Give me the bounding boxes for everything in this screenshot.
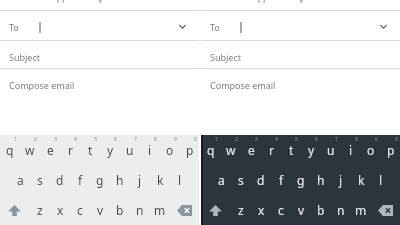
button[interactable]: y [301,135,321,165]
button[interactable] [203,195,228,225]
staticText: p [186,142,194,158]
button[interactable]: r [60,135,80,165]
button[interactable]: o [361,135,381,165]
staticText: m [355,202,367,218]
staticText: 1 [14,136,17,143]
button[interactable]: o [160,135,180,165]
staticText: g [96,172,104,188]
button[interactable]: l [371,165,391,195]
button[interactable]: Compose email [0,69,199,101]
staticText: y [308,142,315,158]
button[interactable]: h [110,165,130,195]
button[interactable]: b [311,195,331,225]
staticText: i [148,142,152,158]
button[interactable]: w [20,135,40,165]
staticText: 4 [74,136,77,143]
button[interactable]: t [80,135,100,165]
button[interactable]: v [291,195,311,225]
button[interactable]: Subject [201,41,400,68]
staticText: v [97,202,104,218]
button[interactable]: x [251,195,271,225]
staticText: d [257,172,265,188]
staticText: e [248,142,255,158]
staticText: z [37,202,43,218]
staticText: s [37,172,43,188]
staticText: 0 [194,136,197,143]
staticText: Subject [210,51,242,63]
staticText: a [17,172,24,188]
button[interactable]: q [0,135,20,165]
button[interactable]: j [331,165,351,195]
staticText: f [279,172,284,188]
button[interactable]: s [231,165,251,195]
button[interactable]: u [321,135,341,165]
staticText: 2 [235,136,238,143]
staticText: h [317,172,325,188]
button[interactable]: e [241,135,261,165]
button[interactable]: m [150,195,170,225]
staticText: r [68,142,73,158]
staticText: t [88,142,93,158]
button[interactable]: i [140,135,160,165]
staticText: 7 [134,136,137,143]
button[interactable]: c [70,195,90,225]
button[interactable]: m [351,195,371,225]
button[interactable]: d [50,165,70,195]
button[interactable]: x [50,195,70,225]
button[interactable]: t [281,135,301,165]
staticText: l [178,172,182,188]
button[interactable]: e [40,135,60,165]
staticText: 8 [154,136,157,143]
button[interactable]: a [211,165,231,195]
button[interactable]: w [221,135,241,165]
button[interactable]: b [110,195,130,225]
button[interactable]: r [261,135,281,165]
staticText: 7 [335,136,338,143]
button[interactable]: y [100,135,120,165]
button[interactable]: h [311,165,331,195]
button[interactable]: k [150,165,170,195]
button[interactable]: g [291,165,311,195]
staticText: a [218,172,225,188]
button[interactable]: p [180,135,200,165]
staticText: 6 [114,136,117,143]
button[interactable]: v [90,195,110,225]
button[interactable] [372,195,398,225]
button[interactable]: Subject [0,41,199,68]
staticText: q [207,142,215,158]
staticText: Subject [9,51,41,63]
button[interactable]: l [170,165,190,195]
staticText: b [317,202,325,218]
button[interactable]: c [271,195,291,225]
staticText: 1 [215,136,218,143]
button[interactable]: z [231,195,251,225]
button[interactable]: f [271,165,291,195]
button[interactable]: a [10,165,30,195]
button[interactable]: To [0,11,199,40]
button[interactable]: j [130,165,150,195]
button[interactable]: To [201,11,400,40]
button[interactable]: i [341,135,361,165]
staticText: To [9,21,19,33]
button[interactable]: n [331,195,351,225]
button[interactable]: d [251,165,271,195]
staticText: j [339,172,343,188]
button[interactable] [2,195,27,225]
button[interactable] [171,195,197,225]
button[interactable]: z [30,195,50,225]
button[interactable]: s [30,165,50,195]
staticText: o [367,142,375,158]
button[interactable]: Compose email [201,69,400,101]
staticText: k [358,172,365,188]
staticText: 5 [295,136,298,143]
button[interactable]: n [130,195,150,225]
staticText: 8 [355,136,358,143]
button[interactable]: u [120,135,140,165]
staticText: w [25,142,35,158]
button[interactable]: q [201,135,221,165]
button[interactable]: p [381,135,400,165]
button[interactable]: g [90,165,110,195]
staticText: x [57,202,64,218]
button[interactable]: f [70,165,90,195]
button[interactable]: k [351,165,371,195]
